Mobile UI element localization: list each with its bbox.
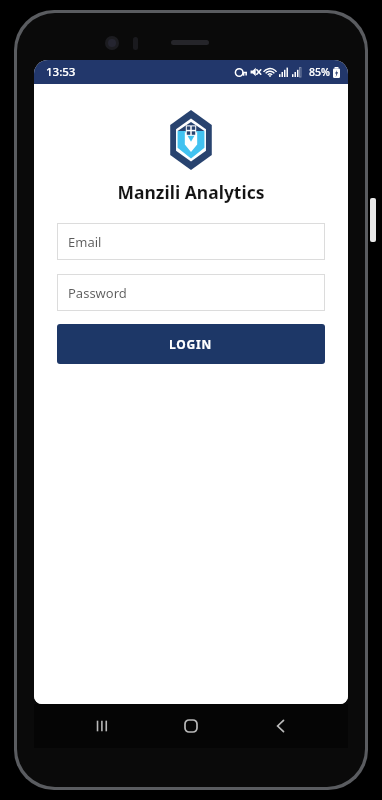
button[interactable]: Password xyxy=(57,274,325,311)
button[interactable]: Email xyxy=(57,223,325,260)
staticText: 13:53 xyxy=(46,64,76,80)
button[interactable]: Back xyxy=(259,704,303,748)
staticText: Manzili Analytics xyxy=(117,180,265,204)
button[interactable]: Recent apps xyxy=(80,704,124,748)
staticText: 85% xyxy=(309,65,330,79)
button[interactable]: LOGIN xyxy=(57,324,325,364)
other: Manzili Analytics logo xyxy=(167,110,215,170)
staticText: Email xyxy=(68,233,102,251)
staticText: LOGIN xyxy=(169,336,213,352)
staticText: Password xyxy=(68,284,127,302)
button[interactable]: Home xyxy=(169,704,213,748)
